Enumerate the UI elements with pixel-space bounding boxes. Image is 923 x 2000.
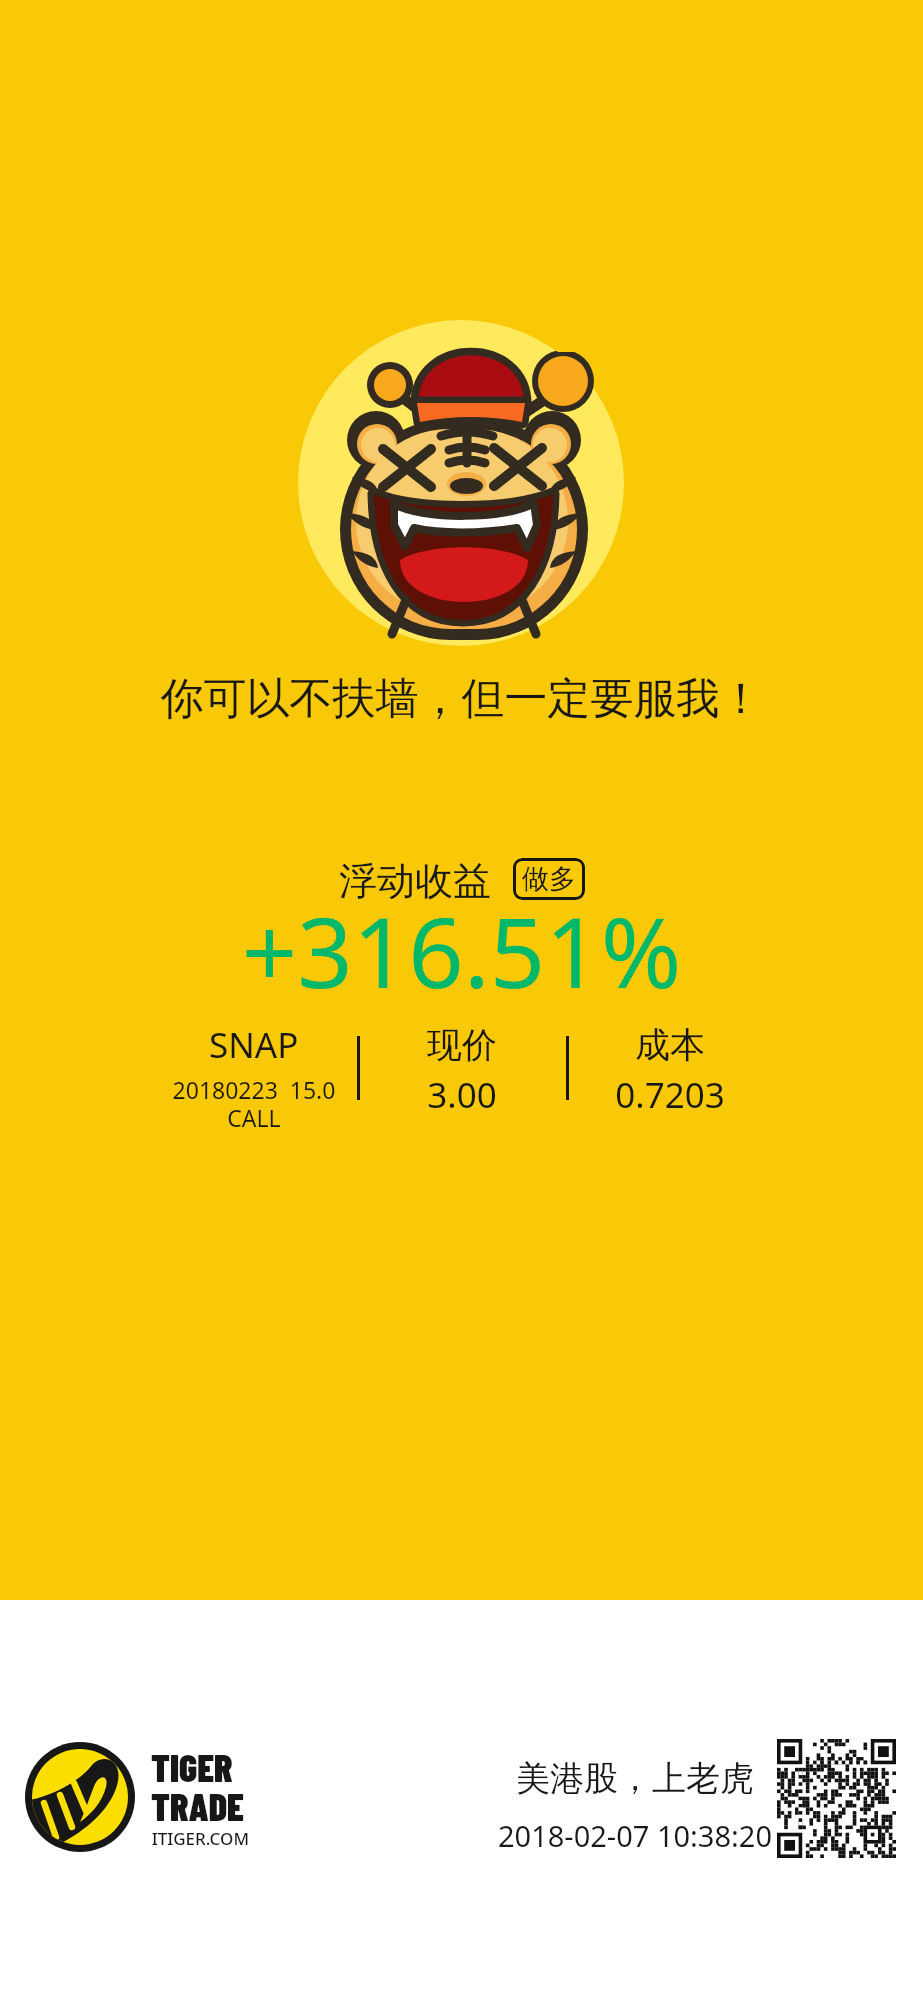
staticText: 20180223 15.0 CALL (159, 1074, 349, 1134)
staticText: 成本 (575, 1023, 765, 1067)
button[interactable]: Tiger mascot (298, 320, 624, 646)
staticText: 现价 (367, 1023, 557, 1067)
staticText: SNAP (209, 1021, 299, 1069)
staticText: ITIGER.COM (150, 1827, 249, 1850)
button[interactable]: Tiger Trade logo (24, 1741, 136, 1853)
staticText: 做多 (522, 862, 576, 896)
button[interactable]: 做多 (513, 858, 585, 900)
staticText: 美港股，上老虎 (435, 1757, 835, 1800)
staticText: 0.7203 (575, 1071, 765, 1119)
staticText: +316.51% (0, 884, 923, 1016)
staticText: 你可以不扶墙，但一定要服我！ (0, 672, 923, 726)
staticText: 2018-02-07 10:38:20 (435, 1816, 835, 1855)
button[interactable]: Scan QR code to download Tiger Trade (777, 1739, 896, 1858)
staticText: 浮动收益 (339, 857, 491, 905)
staticText: TIGER (151, 1744, 233, 1790)
staticText: TRADE (151, 1783, 244, 1829)
staticText: 3.00 (367, 1071, 557, 1119)
